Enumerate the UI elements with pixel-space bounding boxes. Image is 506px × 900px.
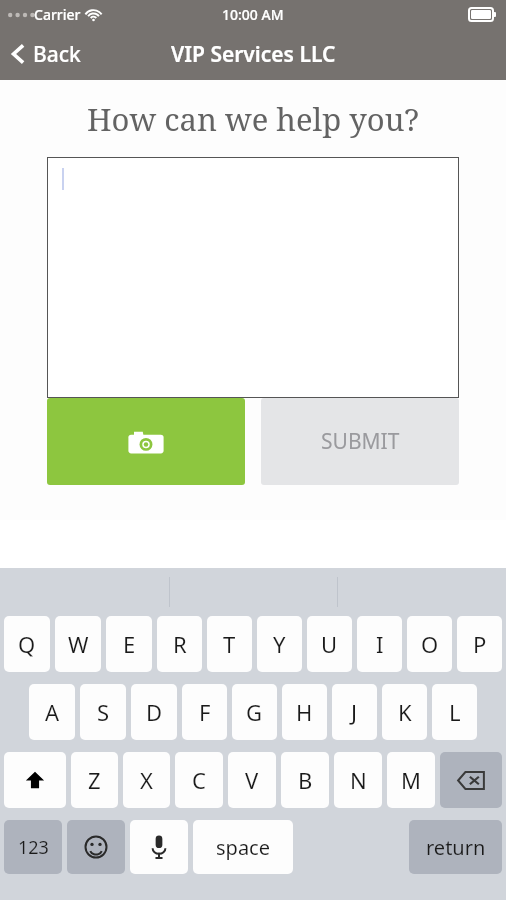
button[interactable]: B [281,752,329,808]
button[interactable]: C [175,752,223,808]
button[interactable]: return [409,820,502,874]
button[interactable]: Backspace [440,752,502,808]
button[interactable]: K [382,684,427,740]
button[interactable]: O [407,616,452,672]
staticText: S [97,697,110,727]
staticText: X [140,765,153,795]
staticText: Back [33,40,81,69]
button[interactable]: space [193,820,293,874]
staticText: V [245,765,259,795]
staticText: J [351,697,358,727]
button[interactable]: E [106,616,152,672]
staticText: Y [273,629,286,659]
staticText: O [421,629,439,659]
staticText: D [146,697,163,727]
staticText: space [216,834,270,861]
staticText: U [321,629,338,659]
button[interactable]: H [282,684,327,740]
staticText: Z [88,765,101,795]
button[interactable]: Z [71,752,118,808]
button[interactable]: L [432,684,477,740]
button[interactable]: Q [4,616,50,672]
staticText: 123 [18,835,49,860]
button[interactable] [47,157,459,398]
staticText: Q [18,629,36,659]
button[interactable]: R [157,616,202,672]
staticText: K [398,697,412,727]
staticText: E [123,629,136,659]
button[interactable]: Back [0,28,93,80]
button[interactable]: Dictation [130,820,188,874]
button[interactable]: T [207,616,252,672]
staticText: W [68,629,89,659]
staticText: I [376,629,384,659]
button[interactable]: G [232,684,277,740]
staticText: C [192,765,206,795]
staticText: SUBMIT [321,427,400,456]
button[interactable]: SUBMIT [261,398,459,485]
button[interactable]: S [80,684,126,740]
button[interactable]: Emoji [67,820,125,874]
button[interactable]: M [387,752,435,808]
button[interactable]: U [307,616,352,672]
button[interactable]: J [332,684,377,740]
button[interactable]: N [334,752,382,808]
staticText: H [296,697,313,727]
staticText: M [401,765,421,795]
button[interactable]: D [131,684,177,740]
staticText: G [246,697,263,727]
staticText: 10:00 AM [222,5,284,24]
button[interactable]: P [457,616,502,672]
staticText: L [449,697,461,727]
staticText: VIP Services LLC [171,40,336,69]
button[interactable]: V [228,752,276,808]
staticText: T [223,629,236,659]
staticText: Carrier [34,5,81,24]
staticText: P [473,629,487,659]
button[interactable]: Take photo [47,398,245,485]
staticText: A [45,697,60,727]
button[interactable]: 123 [4,820,62,874]
staticText: N [350,765,367,795]
button[interactable]: A [29,684,75,740]
button[interactable]: F [182,684,227,740]
staticText: B [298,765,313,795]
staticText: return [426,834,486,861]
button[interactable]: Shift [4,752,66,808]
staticText: How can we help you? [0,98,506,140]
staticText: R [173,629,187,659]
button[interactable]: W [55,616,101,672]
button[interactable]: I [357,616,402,672]
staticText: F [199,697,211,727]
button[interactable]: X [123,752,170,808]
button[interactable]: Y [257,616,302,672]
